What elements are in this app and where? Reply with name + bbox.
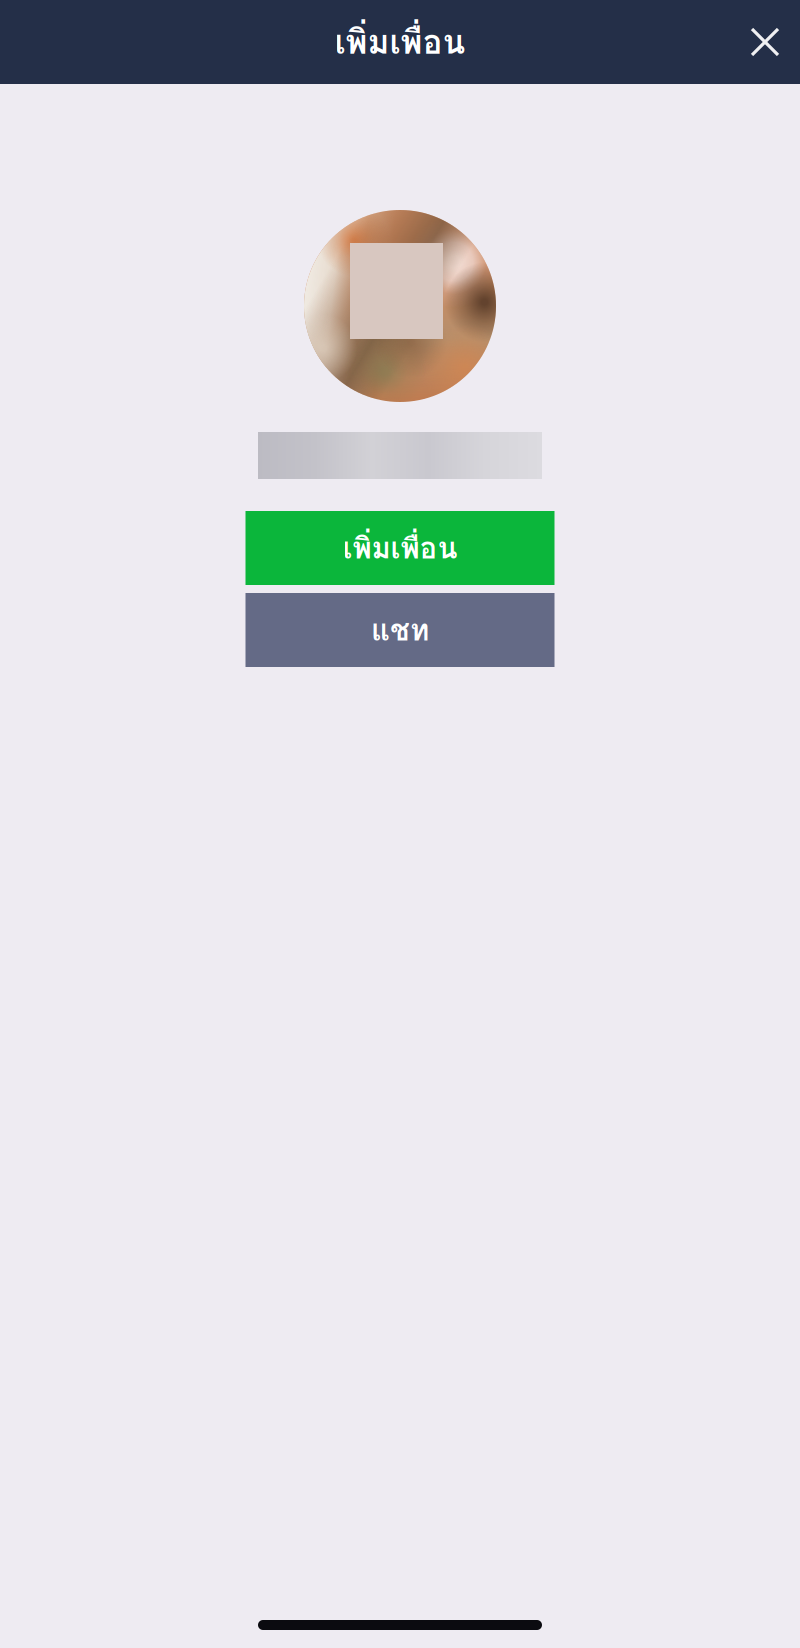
button[interactable]: เพิ่มเพื่อน [245,511,554,585]
button[interactable]: แชท [245,593,554,667]
staticText: แชท [371,607,429,653]
staticText: เพิ่มเพื่อน [334,16,465,68]
button[interactable]: Close [730,0,800,84]
staticText: เพิ่มเพื่อน [342,525,457,571]
